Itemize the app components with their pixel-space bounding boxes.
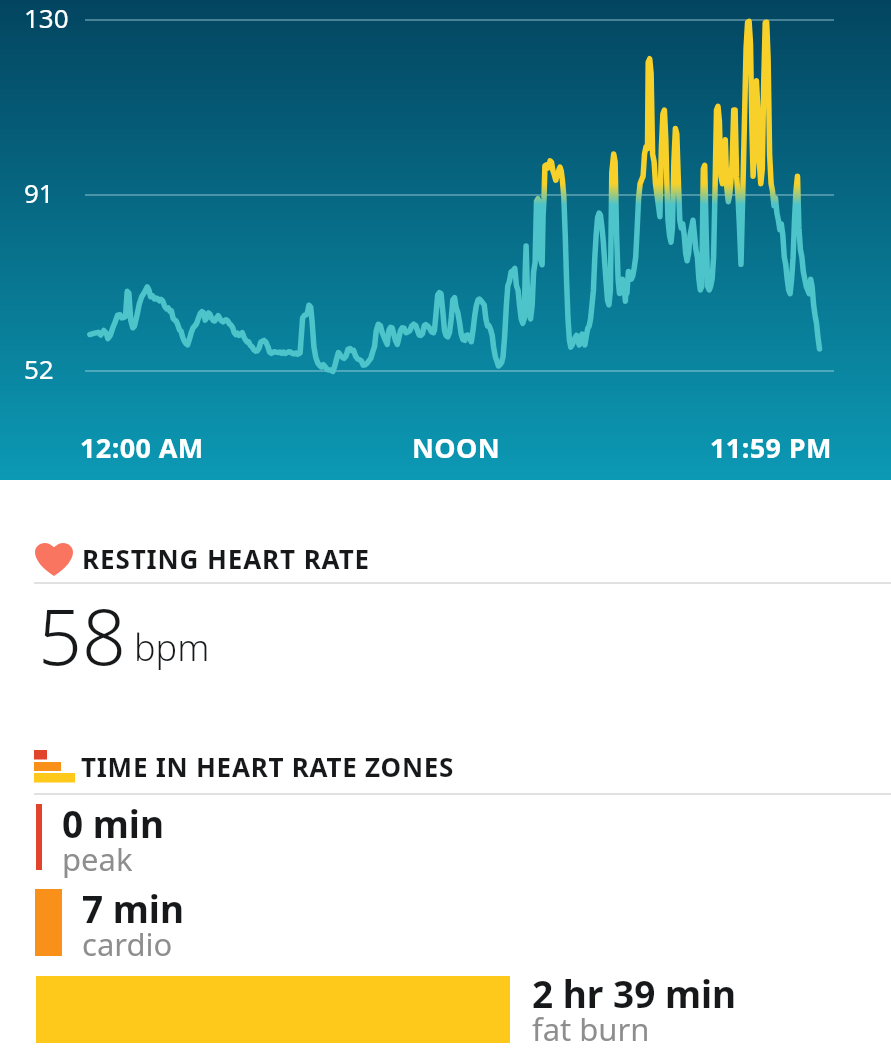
staticText: TIME IN HEART RATE ZONES (81, 749, 455, 784)
button[interactable]: 7 min (0, 880, 891, 965)
staticText: 130 (24, 0, 69, 35)
staticText: cardio (82, 923, 173, 965)
button[interactable]: TIME IN HEART RATE ZONES (0, 729, 891, 795)
staticText: peak (62, 838, 133, 880)
staticText: RESTING HEART RATE (82, 541, 371, 576)
staticText: 58 (38, 583, 126, 688)
staticText: 11:59 PM (710, 429, 832, 466)
staticText: fat burn (532, 1008, 650, 1050)
staticText: 2 hr 39 min (532, 968, 737, 1018)
staticText: NOON (412, 429, 501, 466)
button[interactable]: 58 (0, 584, 891, 749)
staticText: 0 min (62, 798, 164, 848)
staticText: 7 min (82, 883, 184, 933)
button[interactable]: RESTING HEART RATE (0, 480, 891, 584)
button[interactable]: 0 min (0, 795, 891, 880)
staticText: bpm (134, 623, 210, 672)
button[interactable]: Daily heart rate graph (0, 0, 891, 480)
staticText: 52 (24, 351, 54, 386)
button[interactable]: 2 hr 39 min (0, 965, 891, 1050)
staticText: 91 (24, 175, 54, 210)
staticText: 12:00 AM (80, 429, 204, 466)
